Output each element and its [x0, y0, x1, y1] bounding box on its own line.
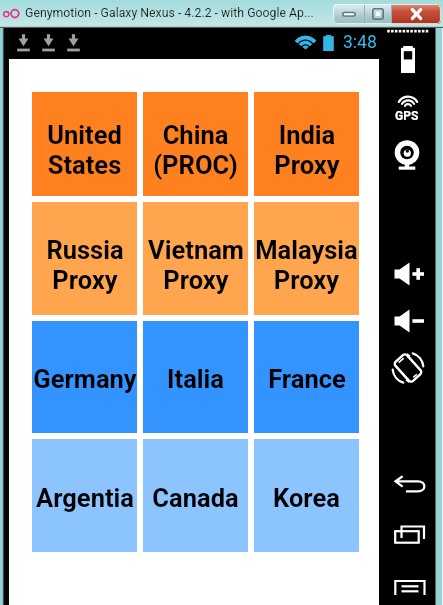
button[interactable]: Canada	[143, 439, 248, 552]
button[interactable]: China (PROC)	[143, 92, 248, 196]
button[interactable]: India Proxy	[254, 92, 359, 196]
button[interactable]: Camera	[394, 140, 420, 172]
button[interactable]: Minimize	[333, 4, 364, 24]
staticText: GPS	[395, 109, 419, 123]
button[interactable]: Maximize	[365, 4, 391, 24]
staticText: Vietnam Proxy	[148, 235, 244, 295]
button[interactable]: Volume down	[394, 308, 427, 336]
button[interactable]: Menu	[394, 573, 427, 595]
button[interactable]: Recent apps	[394, 524, 427, 546]
staticText: Korea	[273, 483, 340, 513]
staticText: Russia Proxy	[46, 235, 124, 295]
staticText: China (PROC)	[153, 120, 238, 180]
staticText: Germany	[33, 364, 137, 394]
staticText: 3:48	[343, 32, 377, 53]
button[interactable]: Volume up	[394, 261, 427, 289]
staticText: United States	[47, 120, 122, 180]
button[interactable]: Malaysia Proxy	[254, 202, 359, 315]
staticText: India Proxy	[274, 120, 340, 180]
button[interactable]: United States	[32, 92, 137, 196]
staticText: France	[268, 364, 346, 394]
button[interactable]: Russia Proxy	[32, 202, 137, 315]
button[interactable]: Korea	[254, 439, 359, 552]
staticText: Canada	[152, 483, 239, 513]
button[interactable]: Back	[394, 475, 427, 497]
button[interactable]: Italia	[143, 321, 248, 433]
button[interactable]: Argentia	[32, 439, 137, 552]
button[interactable]: Vietnam Proxy	[143, 202, 248, 315]
staticText: Italia	[167, 364, 224, 394]
staticText: Malaysia Proxy	[255, 235, 358, 295]
button[interactable]: Germany	[32, 321, 137, 433]
button[interactable]: Rotate	[391, 351, 425, 385]
staticText: Argentia	[36, 483, 134, 513]
button[interactable]: France	[254, 321, 359, 433]
button[interactable]: Close	[392, 4, 441, 24]
staticText: Genymotion - Galaxy Nexus - 4.2.2 - with…	[25, 6, 314, 20]
